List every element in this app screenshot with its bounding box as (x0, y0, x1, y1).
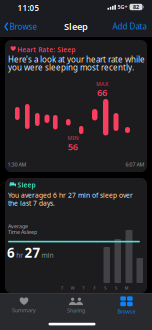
button[interactable]: Sleep (5, 178, 147, 293)
staticText: min (42, 251, 54, 259)
staticText: MAX (96, 80, 108, 88)
staticText: 27 (24, 244, 40, 261)
staticText: Browse (117, 308, 135, 315)
button[interactable]: Browse (0, 19, 40, 33)
staticText: 5G+ (117, 3, 127, 11)
staticText: 1:30 AM (7, 161, 26, 168)
staticText: Browse (9, 21, 37, 32)
staticText: Add Data (112, 21, 146, 32)
staticText: Time Asleep (8, 228, 37, 235)
button[interactable]: Sharing (54, 296, 98, 316)
staticText: You averaged 6 hr 27 min of sleep over (8, 191, 133, 200)
staticText: you were sleeping most recently. (8, 62, 134, 73)
staticText: T (61, 285, 63, 291)
staticText: M (125, 285, 129, 291)
staticText: the last 7 days. (8, 199, 55, 208)
button[interactable]: Heart Rate: Sleep (5, 40, 147, 172)
staticText: S (115, 285, 117, 291)
staticText: Average (8, 223, 28, 230)
staticText: F (93, 285, 95, 291)
staticText: 56 (68, 140, 78, 153)
staticText: hr (16, 251, 23, 259)
staticText: 11:05 (17, 3, 39, 13)
staticText: Summary (12, 307, 36, 314)
staticText: 82 (133, 3, 139, 11)
button[interactable]: Add Data (109, 19, 149, 33)
staticText: W (71, 285, 75, 291)
staticText: Heart Rate: Sleep (17, 45, 75, 54)
staticText: 66 (97, 86, 107, 99)
staticText: Sleep (17, 181, 35, 189)
staticText: 6:07 AM (125, 161, 144, 168)
staticText: Sharing (67, 307, 85, 314)
staticText: MIN (67, 134, 78, 142)
staticText: Here's a look at your heart rate while (8, 54, 145, 65)
button[interactable]: Summary (2, 296, 46, 316)
staticText: T (83, 285, 85, 291)
staticText: S (104, 285, 106, 291)
button[interactable]: Browse (104, 296, 148, 316)
staticText: 6 (7, 244, 15, 261)
staticText: Sleep (64, 20, 88, 33)
